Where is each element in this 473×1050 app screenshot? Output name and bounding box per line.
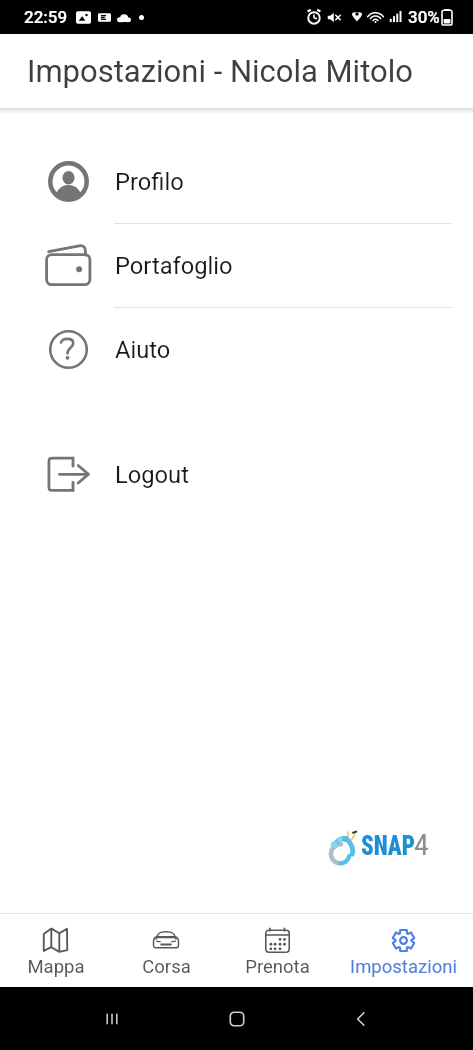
staticText: Logout <box>115 461 189 489</box>
staticText: Aiuto <box>115 336 171 364</box>
staticText: 30% <box>408 7 440 27</box>
button[interactable]: Aiuto <box>0 308 473 391</box>
staticText: Mappa <box>27 956 85 978</box>
button[interactable]: Mappa <box>0 914 111 987</box>
button[interactable]: Logout <box>0 433 473 516</box>
button[interactable]: Profilo <box>0 140 473 224</box>
button[interactable]: Corsa <box>111 914 222 987</box>
staticText: Impostazioni <box>350 956 457 978</box>
button[interactable]: Impostazioni <box>333 914 473 987</box>
button[interactable]: Prenota <box>222 914 333 987</box>
staticText: Corsa <box>142 956 191 978</box>
staticText: 4 <box>414 827 429 862</box>
staticText: Prenota <box>245 956 310 978</box>
staticText: SNAP <box>361 829 415 862</box>
staticText: Portafoglio <box>115 252 233 280</box>
other: Home <box>225 1007 249 1031</box>
staticText: 22:59 <box>24 7 68 27</box>
staticText: Impostazioni - Nicola Mitolo <box>27 53 413 89</box>
staticText: Profilo <box>115 168 184 196</box>
other: Recent apps <box>100 1007 124 1031</box>
other: Back <box>349 1007 373 1031</box>
button[interactable]: Portafoglio <box>0 224 473 308</box>
